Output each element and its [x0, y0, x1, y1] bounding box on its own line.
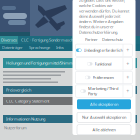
button[interactable]: Partner	[85, 37, 98, 42]
staticText: +	[126, 74, 129, 81]
staticText: +	[126, 47, 129, 54]
staticText: Nutzerforum	[4, 125, 27, 130]
staticText: Datenträger	[2, 45, 23, 50]
staticText: Preisvergleich	[6, 87, 31, 93]
staticText: +	[126, 87, 129, 95]
button[interactable]: Funktional	[76, 58, 123, 70]
staticText: Präferenzen	[92, 75, 113, 80]
button[interactable]: Marketing / Third Party	[76, 85, 123, 97]
button[interactable]: Diverses	[0, 36, 18, 44]
staticText: Heilungen und Fertigungsmittel/Shimmer	[6, 60, 77, 66]
button[interactable]: Unbedingt erforderlich	[76, 44, 123, 56]
staticText: Alle akzeptieren	[90, 102, 118, 107]
button[interactable]: Alle ablehnen	[77, 125, 131, 135]
staticText: Informationen Nutzung	[6, 116, 45, 122]
staticText: Infos	[56, 45, 64, 50]
button[interactable]: Preisvergleich	[3, 86, 137, 94]
button[interactable]: CLC Category Statement	[3, 97, 115, 105]
staticText: Unbedingt erforderlich	[83, 48, 122, 53]
staticText: bestmögliche Online-Erlebnis zu geben. L…	[79, 0, 129, 35]
button[interactable]: Nur Auswahl akzeptieren	[77, 112, 131, 122]
staticText: Partner	[85, 37, 98, 42]
staticText: Datenschutz	[102, 37, 123, 42]
button[interactable]: Details anzeigen	[123, 85, 132, 97]
button[interactable]: Details anzeigen	[123, 44, 132, 56]
staticText: CLC Category Statement	[6, 98, 49, 104]
button[interactable]: Präferenzen	[76, 71, 123, 84]
button[interactable]: CLC · Fertigung Sondermaschinen	[18, 36, 80, 44]
button[interactable]: Datenschutz	[102, 37, 123, 42]
staticText: Diverses	[1, 37, 17, 43]
button[interactable]: Alle akzeptieren	[77, 99, 131, 109]
button[interactable]: Details anzeigen	[123, 71, 132, 84]
staticText: Marketing / Third Party	[88, 86, 118, 96]
staticText: Sprachwege	[29, 45, 50, 50]
staticText: Funktional	[94, 61, 111, 66]
staticText: +	[126, 60, 129, 67]
button[interactable]: Informationen Nutzung	[3, 115, 137, 123]
staticText: CLC · Fertigung Sondermaschinen	[21, 37, 80, 43]
staticText: Alle ablehnen	[92, 127, 115, 132]
staticText: Nur Auswahl akzeptieren	[82, 115, 126, 120]
button[interactable]: Details anzeigen	[123, 58, 132, 70]
